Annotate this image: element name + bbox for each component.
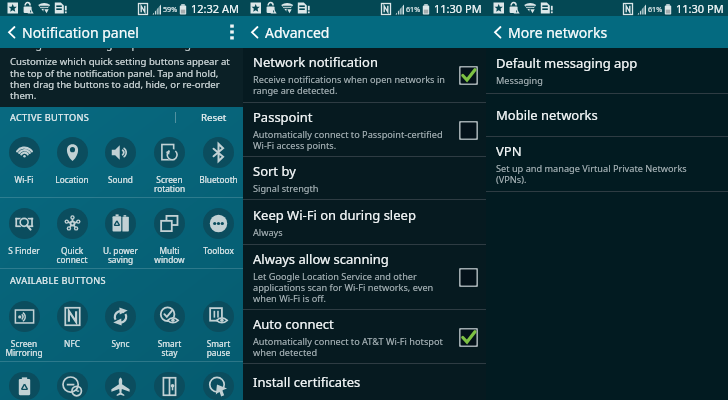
button[interactable]: Passpoint: [243, 103, 486, 156]
staticText: VPN: [496, 142, 522, 160]
button[interactable]: Sound: [96, 127, 145, 197]
staticText: Mobile networks: [496, 106, 598, 124]
staticText: 59%: [163, 4, 178, 14]
staticText: 61%: [406, 4, 421, 14]
button[interactable]: Screen rotation: [145, 127, 194, 197]
button[interactable]: Sync: [96, 291, 145, 361]
button[interactable]: Toggle Network notification: [458, 65, 478, 85]
staticText: 11:30 PM: [676, 1, 724, 16]
button[interactable]: VPN: [486, 137, 728, 191]
button[interactable]: Toolbox: [194, 198, 243, 268]
button[interactable]: More networks: [486, 16, 614, 48]
staticText: U. power saving: [96, 245, 145, 266]
button[interactable]: Advanced: [243, 16, 336, 48]
button[interactable]: Location: [48, 127, 96, 197]
staticText: Sync: [96, 338, 145, 349]
staticText: Automatically connect to AT&T Wi-Fi hots…: [253, 335, 454, 359]
button[interactable]: Multi window: [145, 198, 194, 268]
button[interactable]: Default messaging app: [486, 48, 728, 93]
button[interactable]: Toggle Auto connect: [458, 327, 478, 347]
staticText: Default messaging app: [496, 54, 638, 72]
staticText: Wi-Fi: [0, 174, 48, 185]
staticText: Keep Wi-Fi on during sleep: [253, 206, 416, 224]
button[interactable]: wallet: [145, 362, 194, 400]
button[interactable]: Network notification: [243, 48, 486, 102]
staticText: ACTIVE BUTTONS: [10, 111, 90, 124]
button[interactable]: Reset: [194, 109, 234, 126]
staticText: Install certificates: [253, 373, 361, 391]
button[interactable]: Sort by: [243, 157, 486, 199]
staticText: More networks: [508, 23, 608, 42]
staticText: 61%: [648, 4, 663, 14]
staticText: Passpoint: [253, 108, 313, 126]
button[interactable]: U. power saving: [96, 198, 145, 268]
staticText: Customize which quick setting buttons ap…: [10, 55, 235, 102]
button[interactable]: Screen Mirroring: [0, 291, 48, 361]
staticText: Quick connect: [48, 245, 96, 266]
staticText: Multi window: [145, 245, 194, 266]
button[interactable]: Wi-Fi: [0, 127, 48, 197]
button[interactable]: batt: [0, 362, 48, 400]
staticText: Automatically connect to Passpoint-certi…: [253, 128, 454, 152]
staticText: Sort by: [253, 162, 296, 180]
staticText: Location: [48, 174, 96, 185]
button[interactable]: Bluetooth: [194, 127, 243, 197]
staticText: Always allow scanning: [253, 250, 389, 268]
button[interactable]: Mobile networks: [486, 94, 728, 136]
staticText: Screen rotation: [145, 174, 194, 195]
staticText: Receive notifications when open networks…: [253, 73, 454, 97]
button[interactable]: S Finder: [0, 198, 48, 268]
button[interactable]: Smart pause: [194, 291, 243, 361]
staticText: Toolbox: [194, 245, 243, 256]
button[interactable]: Toggle Always allow scanning: [458, 267, 478, 287]
staticText: Always: [253, 226, 283, 239]
staticText: Messaging: [496, 74, 543, 87]
staticText: Let Google Location Service and other ap…: [253, 270, 454, 305]
button[interactable]: Toggle Passpoint: [458, 120, 478, 140]
button[interactable]: Auto connect: [243, 310, 486, 363]
staticText: Smart stay: [145, 338, 194, 359]
button[interactable]: Always allow scanning: [243, 245, 486, 309]
staticText: Change the ordering of quick settings: [10, 48, 197, 51]
staticText: Network notification: [253, 53, 378, 71]
button[interactable]: Keep Wi-Fi on during sleep: [243, 200, 486, 244]
button[interactable]: plane: [96, 362, 145, 400]
staticText: S Finder: [0, 245, 48, 256]
button[interactable]: dnd: [48, 362, 96, 400]
staticText: Notification panel: [22, 23, 139, 42]
staticText: 11:30 PM: [434, 1, 482, 16]
staticText: Auto connect: [253, 315, 334, 333]
staticText: Bluetooth: [194, 174, 243, 185]
button[interactable]: Smart stay: [145, 291, 194, 361]
staticText: Advanced: [265, 23, 330, 42]
button[interactable]: More options: [221, 16, 243, 48]
staticText: Screen Mirroring: [0, 338, 48, 359]
staticText: NFC: [48, 338, 96, 349]
staticText: Reset: [201, 111, 227, 124]
button[interactable]: touch: [194, 362, 243, 400]
staticText: Smart pause: [194, 338, 243, 359]
staticText: AVAILABLE BUTTONS: [10, 274, 106, 287]
staticText: 12:32 AM: [191, 1, 239, 16]
staticText: Signal strength: [253, 182, 319, 195]
button[interactable]: Quick connect: [48, 198, 96, 268]
button[interactable]: Install certificates: [243, 364, 486, 400]
button[interactable]: NFC: [48, 291, 96, 361]
button[interactable]: Notification panel: [0, 16, 145, 48]
staticText: Set up and manage Virtual Private Networ…: [496, 162, 692, 186]
staticText: Sound: [96, 174, 145, 185]
